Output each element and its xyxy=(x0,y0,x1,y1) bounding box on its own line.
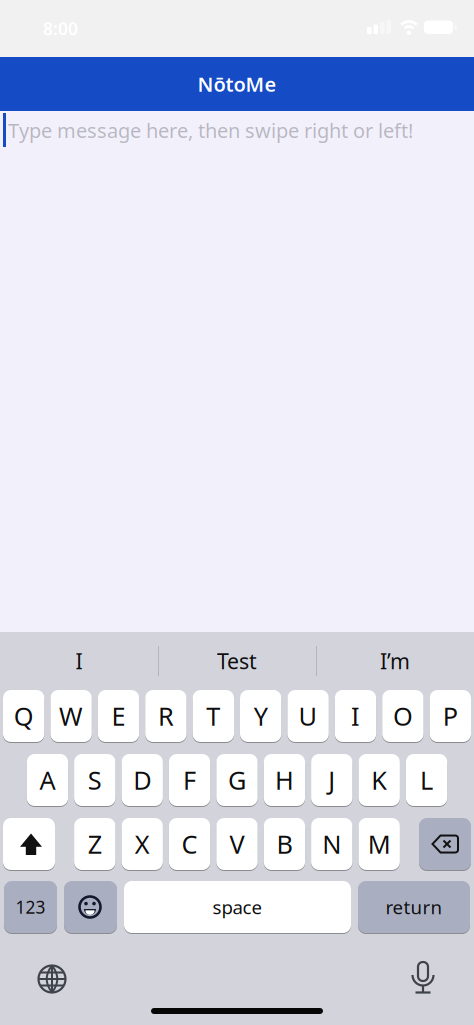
button[interactable]: R xyxy=(145,690,187,742)
staticText: E xyxy=(111,699,125,733)
button[interactable]: T xyxy=(193,690,234,742)
staticText: O xyxy=(393,699,413,733)
button[interactable]: Type message here, then swipe right or l… xyxy=(0,111,474,632)
button[interactable]: O xyxy=(382,690,424,742)
button[interactable]: W xyxy=(50,690,92,742)
button[interactable]: B xyxy=(264,818,305,870)
button[interactable]: V xyxy=(216,818,258,870)
button[interactable]: 123 xyxy=(4,881,57,933)
staticText: A xyxy=(39,763,55,797)
button[interactable]: K xyxy=(358,754,400,806)
button[interactable]: E xyxy=(98,690,139,742)
button[interactable]: return xyxy=(358,881,470,933)
button[interactable] xyxy=(3,818,55,870)
staticText: I xyxy=(351,699,360,733)
staticText: B xyxy=(276,827,292,861)
button[interactable]: F xyxy=(169,754,210,806)
staticText: space xyxy=(212,895,262,919)
button[interactable]: P xyxy=(430,690,471,742)
button[interactable]: I’m xyxy=(316,632,474,690)
button[interactable] xyxy=(64,881,117,933)
button[interactable]: C xyxy=(169,818,210,870)
button[interactable]: H xyxy=(264,754,305,806)
staticText: F xyxy=(183,763,196,797)
staticText: NōtoMe xyxy=(197,71,276,97)
button[interactable]: X xyxy=(121,818,163,870)
button[interactable]: I xyxy=(0,632,158,690)
staticText: K xyxy=(371,763,387,797)
staticText: Q xyxy=(14,699,34,733)
button[interactable]: L xyxy=(406,754,447,806)
button[interactable]: Test xyxy=(158,632,316,690)
staticText: R xyxy=(158,699,174,733)
staticText: X xyxy=(135,827,150,861)
staticText: M xyxy=(368,827,391,861)
staticText: L xyxy=(420,763,433,797)
staticText: H xyxy=(275,763,294,797)
staticText: P xyxy=(443,699,458,733)
staticText: D xyxy=(133,763,151,797)
staticText: S xyxy=(88,763,102,797)
staticText: I xyxy=(75,647,82,675)
button[interactable] xyxy=(403,955,443,999)
button[interactable]: M xyxy=(358,818,400,870)
button[interactable]: U xyxy=(287,690,329,742)
staticText: U xyxy=(299,699,318,733)
staticText: G xyxy=(228,763,246,797)
button[interactable]: J xyxy=(311,754,352,806)
button[interactable]: Y xyxy=(240,690,281,742)
staticText: V xyxy=(229,827,244,861)
staticText: Type message here, then swipe right or l… xyxy=(8,117,413,144)
staticText: 8:00 xyxy=(43,17,78,40)
staticText: Z xyxy=(88,827,102,861)
button[interactable]: D xyxy=(121,754,163,806)
staticText: J xyxy=(328,763,335,797)
staticText: 123 xyxy=(15,895,45,918)
staticText: W xyxy=(59,699,83,733)
button[interactable] xyxy=(419,818,471,870)
staticText: Y xyxy=(254,699,268,733)
staticText: I’m xyxy=(380,647,410,675)
button[interactable]: A xyxy=(27,754,68,806)
button[interactable]: I xyxy=(335,690,376,742)
staticText: N xyxy=(322,827,341,861)
button[interactable] xyxy=(30,957,74,1001)
staticText: Test xyxy=(217,647,257,675)
button[interactable]: G xyxy=(216,754,258,806)
button[interactable]: Z xyxy=(74,818,115,870)
staticText: T xyxy=(206,699,220,733)
button[interactable]: space xyxy=(124,881,351,933)
button[interactable]: N xyxy=(311,818,352,870)
button[interactable]: S xyxy=(74,754,115,806)
staticText: return xyxy=(385,895,442,919)
button[interactable]: Q xyxy=(3,690,44,742)
staticText: C xyxy=(182,827,198,861)
